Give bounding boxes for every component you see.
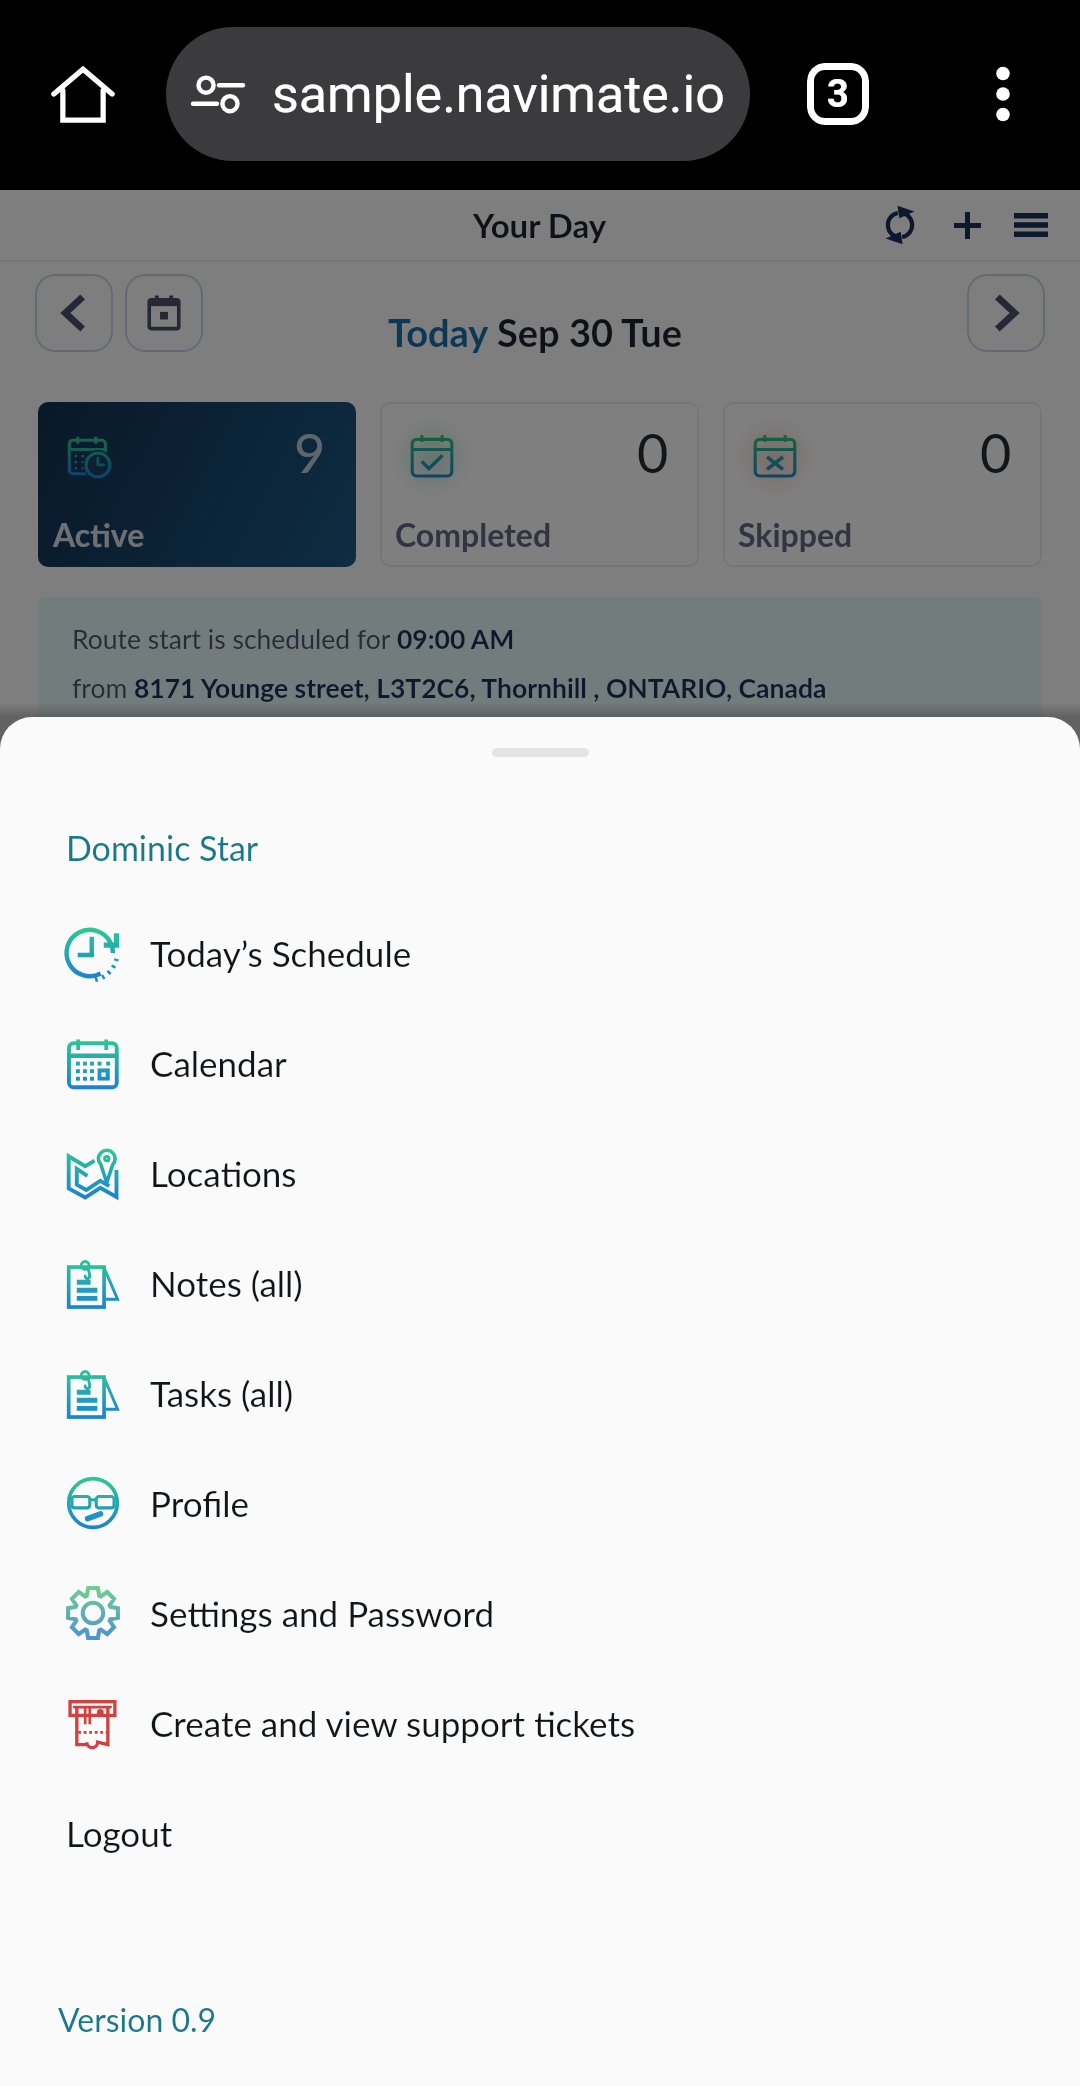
- button[interactable]: 0: [723, 402, 1042, 567]
- staticText: Your Day: [473, 205, 607, 245]
- button[interactable]: Notes (all): [0, 1228, 1080, 1338]
- button[interactable]: sample.navimate.io: [166, 27, 750, 161]
- staticText: Version 0.9: [58, 2000, 217, 2038]
- staticText: Locations: [150, 1152, 297, 1194]
- button[interactable]: Settings and Password: [0, 1558, 1080, 1668]
- button[interactable]: Refresh: [876, 201, 924, 249]
- button[interactable]: Pick date: [125, 274, 203, 352]
- staticText: Completed: [395, 515, 552, 553]
- staticText: Dominic Star: [66, 827, 259, 868]
- button[interactable]: Today’s Schedule: [0, 898, 1080, 1008]
- staticText: 9: [294, 420, 326, 485]
- staticText: 0: [637, 420, 669, 485]
- staticText: Settings and Password: [150, 1592, 495, 1634]
- staticText: 3: [827, 72, 849, 117]
- button[interactable]: Previous day: [35, 274, 113, 352]
- button[interactable]: Profile: [0, 1448, 1080, 1558]
- button[interactable]: Home: [0, 0, 166, 188]
- staticText: 09:00 AM: [397, 623, 515, 655]
- staticText: Tasks (all): [150, 1372, 294, 1414]
- button[interactable]: Create and view support tickets: [0, 1668, 1080, 1778]
- staticText: Today’s Schedule: [150, 932, 412, 974]
- staticText: Logout: [66, 1812, 173, 1854]
- button[interactable]: Locations: [0, 1118, 1080, 1228]
- staticText: from: [72, 672, 134, 704]
- button[interactable]: Tabs: [783, 39, 893, 149]
- button[interactable]: More options: [926, 0, 1080, 188]
- staticText: Route start is scheduled for: [72, 623, 397, 655]
- staticText: Create and view support tickets: [150, 1702, 636, 1744]
- button[interactable]: Calendar: [0, 1008, 1080, 1118]
- button[interactable]: Tasks (all): [0, 1338, 1080, 1448]
- staticText: 8171 Younge street, L3T2C6, Thornhill , …: [134, 672, 827, 704]
- button[interactable]: 9: [38, 402, 356, 567]
- button[interactable]: Next day: [967, 274, 1045, 352]
- staticText: Active: [53, 515, 145, 553]
- button[interactable]: Logout: [0, 1778, 1080, 1888]
- staticText: Notes (all): [150, 1262, 303, 1304]
- staticText: sample.navimate.io: [272, 64, 725, 125]
- staticText: Today: [388, 309, 497, 355]
- staticText: Calendar: [150, 1042, 287, 1084]
- staticText: Profile: [150, 1482, 249, 1524]
- button[interactable]: Add: [943, 201, 991, 249]
- button[interactable]: Menu: [1007, 201, 1055, 249]
- staticText: 0: [980, 420, 1012, 485]
- staticText: Sep 30 Tue: [497, 309, 683, 355]
- button[interactable]: 0: [380, 402, 699, 567]
- staticText: Skipped: [738, 515, 853, 553]
